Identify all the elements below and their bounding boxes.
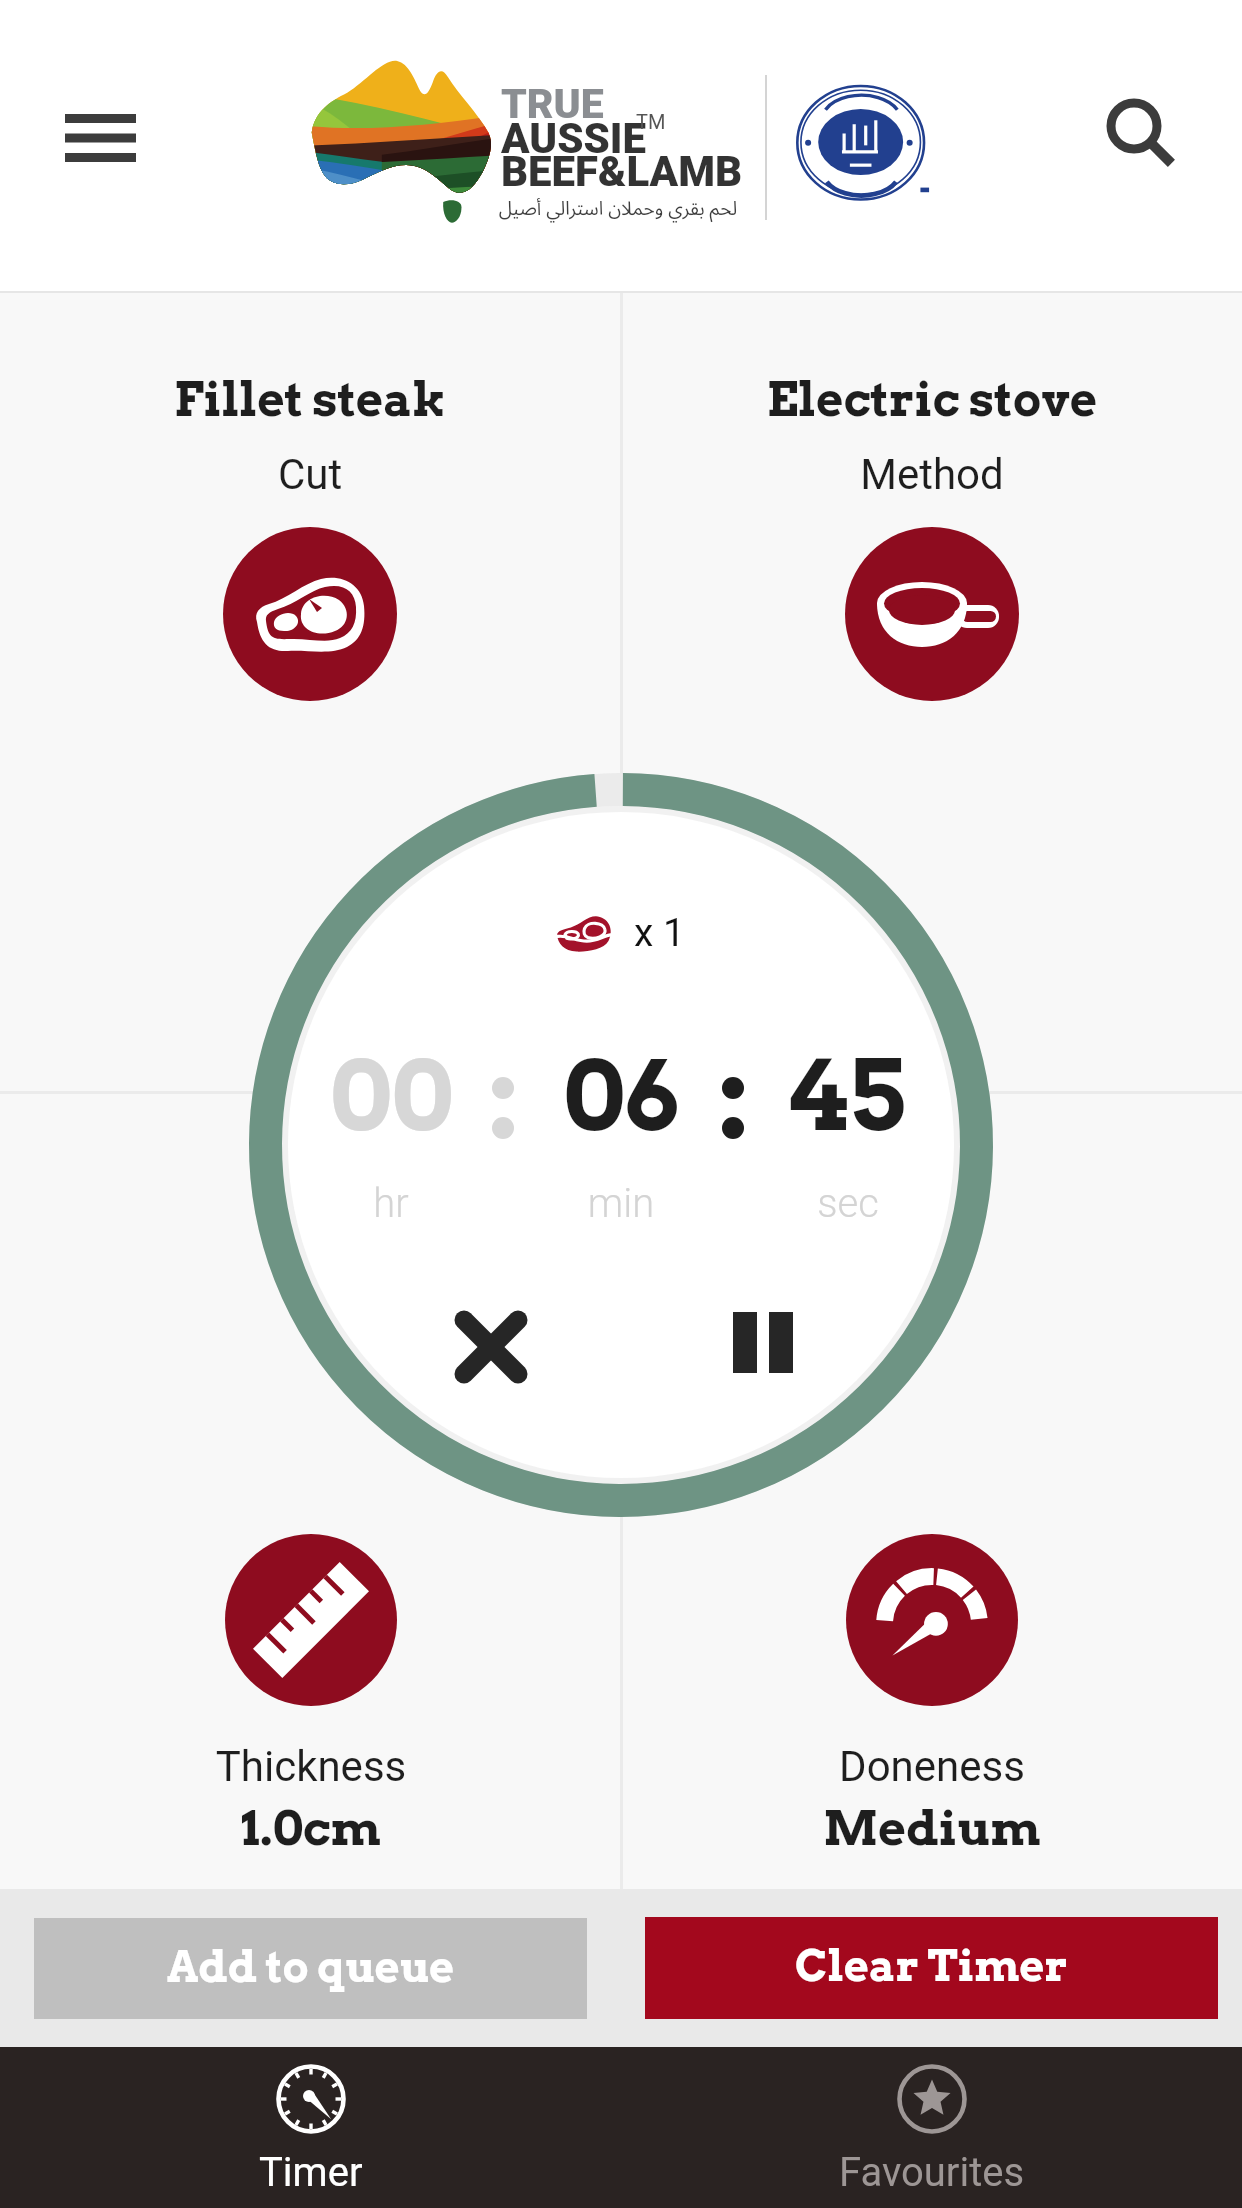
- button[interactable]: Cancel timer: [436, 1292, 546, 1402]
- staticText: TM: [636, 110, 666, 133]
- staticText: Favourites: [839, 2149, 1025, 2196]
- staticText: Timer: [259, 2149, 363, 2196]
- staticText: 00: [41, 1037, 741, 1154]
- button[interactable]: Timer: [0, 2047, 621, 2208]
- staticText: Medium: [582, 1799, 1242, 1857]
- button[interactable]: Electric stove method: [845, 527, 1019, 701]
- button[interactable]: Thickness: [225, 1534, 397, 1706]
- staticText: min: [271, 1180, 971, 1227]
- staticText: Fillet steak: [0, 371, 660, 428]
- staticText: 1.0cm: [0, 1799, 661, 1857]
- staticText: TRUE: [501, 80, 604, 128]
- staticText: 06: [271, 1037, 971, 1154]
- staticText: sec: [498, 1180, 1198, 1227]
- staticText: hr: [41, 1180, 741, 1227]
- staticText: Thickness: [0, 1742, 661, 1791]
- staticText: Cut: [0, 450, 660, 499]
- staticText: Doneness: [582, 1742, 1242, 1791]
- staticText: لحم بقري وحملان استرالي أصيل: [498, 189, 738, 229]
- staticText: 45: [498, 1037, 1198, 1154]
- button[interactable]: Search: [1068, 68, 1208, 208]
- button[interactable]: Clear Timer: [645, 1917, 1218, 2019]
- staticText: Method: [582, 450, 1242, 499]
- button[interactable]: Fillet steak cut: [223, 527, 397, 701]
- staticText: Add to queue: [167, 1941, 455, 1993]
- button[interactable]: Add to queue: [34, 1918, 587, 2019]
- button[interactable]: Favourites: [621, 2047, 1242, 2208]
- button[interactable]: Pause timer: [708, 1287, 818, 1397]
- button[interactable]: Open navigation menu: [30, 68, 170, 208]
- staticText: x 1: [634, 910, 685, 956]
- staticText: Electric stove: [582, 371, 1242, 428]
- button[interactable]: Doneness: [846, 1534, 1018, 1706]
- staticText: AUSSIE: [501, 114, 646, 163]
- staticText: BEEF&LAMB: [501, 147, 743, 196]
- staticText: Clear Timer: [795, 1940, 1068, 1992]
